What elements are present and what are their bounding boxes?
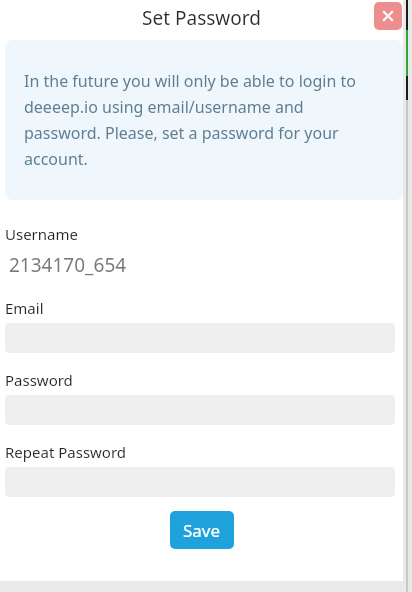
staticText: Save [183,519,221,542]
staticText: Username [5,224,78,244]
button[interactable]: Save [170,511,234,549]
button[interactable]: Close [374,2,402,30]
staticText: In the future you will only be able to l… [24,70,381,170]
staticText: 2134170_654 [9,252,127,278]
button[interactable]: 2134170_654 [5,249,395,281]
staticText: Email [5,298,44,318]
staticText: Set Password [142,5,261,31]
staticText: Repeat Password [5,442,127,462]
staticText: Password [5,370,73,390]
